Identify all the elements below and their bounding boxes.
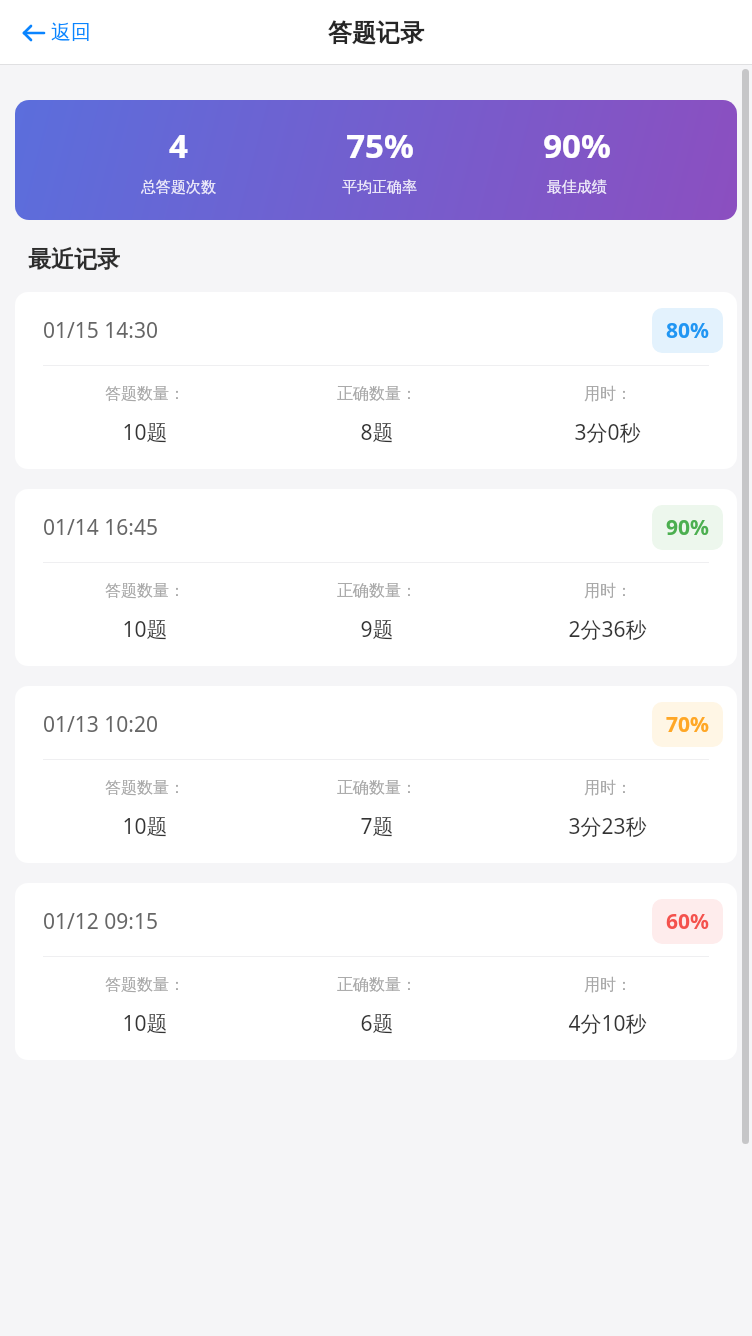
staticText: 7题 (360, 812, 394, 841)
button[interactable]: 01/12 09:15 (15, 883, 737, 1060)
staticText: 用时： (584, 975, 632, 995)
button[interactable]: 01/15 14:30 (15, 292, 737, 469)
staticText: 正确数量： (337, 581, 417, 601)
staticText: 答题数量： (105, 581, 185, 601)
staticText: 01/12 09:15 (43, 907, 158, 936)
staticText: 6题 (360, 1009, 394, 1038)
staticText: 4 (169, 123, 188, 168)
staticText: 3分0秒 (574, 418, 641, 447)
staticText: 用时： (584, 581, 632, 601)
staticText: 答题记录 (328, 18, 424, 48)
staticText: 2分36秒 (568, 615, 647, 644)
staticText: 75% (346, 123, 414, 168)
button[interactable]: 01/14 16:45 (15, 489, 737, 666)
staticText: 答题数量： (105, 778, 185, 798)
staticText: 01/13 10:20 (43, 710, 158, 739)
staticText: 答题数量： (105, 975, 185, 995)
staticText: 10题 (122, 812, 168, 841)
staticText: 70% (666, 710, 709, 739)
staticText: 返回 (51, 20, 91, 45)
staticText: 10题 (122, 615, 168, 644)
button[interactable]: 01/13 10:20 (15, 686, 737, 863)
staticText: 4分10秒 (568, 1009, 647, 1038)
staticText: 正确数量： (337, 384, 417, 404)
staticText: 10题 (122, 1009, 168, 1038)
staticText: 总答题次数 (141, 178, 216, 197)
staticText: 用时： (584, 778, 632, 798)
staticText: 正确数量： (337, 778, 417, 798)
staticText: 用时： (584, 384, 632, 404)
staticText: 正确数量： (337, 975, 417, 995)
staticText: 90% (666, 513, 709, 542)
button[interactable]: 返回 (16, 14, 97, 51)
staticText: 平均正确率 (342, 178, 417, 197)
staticText: 01/15 14:30 (43, 316, 158, 345)
staticText: 8题 (360, 418, 394, 447)
staticText: 90% (543, 123, 611, 168)
staticText: 答题数量： (105, 384, 185, 404)
staticText: 最近记录 (28, 245, 120, 274)
staticText: 60% (666, 907, 709, 936)
staticText: 10题 (122, 418, 168, 447)
staticText: 最佳成绩 (547, 178, 607, 197)
staticText: 3分23秒 (568, 812, 647, 841)
staticText: 80% (666, 316, 709, 345)
staticText: 01/14 16:45 (43, 513, 158, 542)
staticText: 9题 (360, 615, 394, 644)
button[interactable]: 4 (15, 100, 737, 220)
